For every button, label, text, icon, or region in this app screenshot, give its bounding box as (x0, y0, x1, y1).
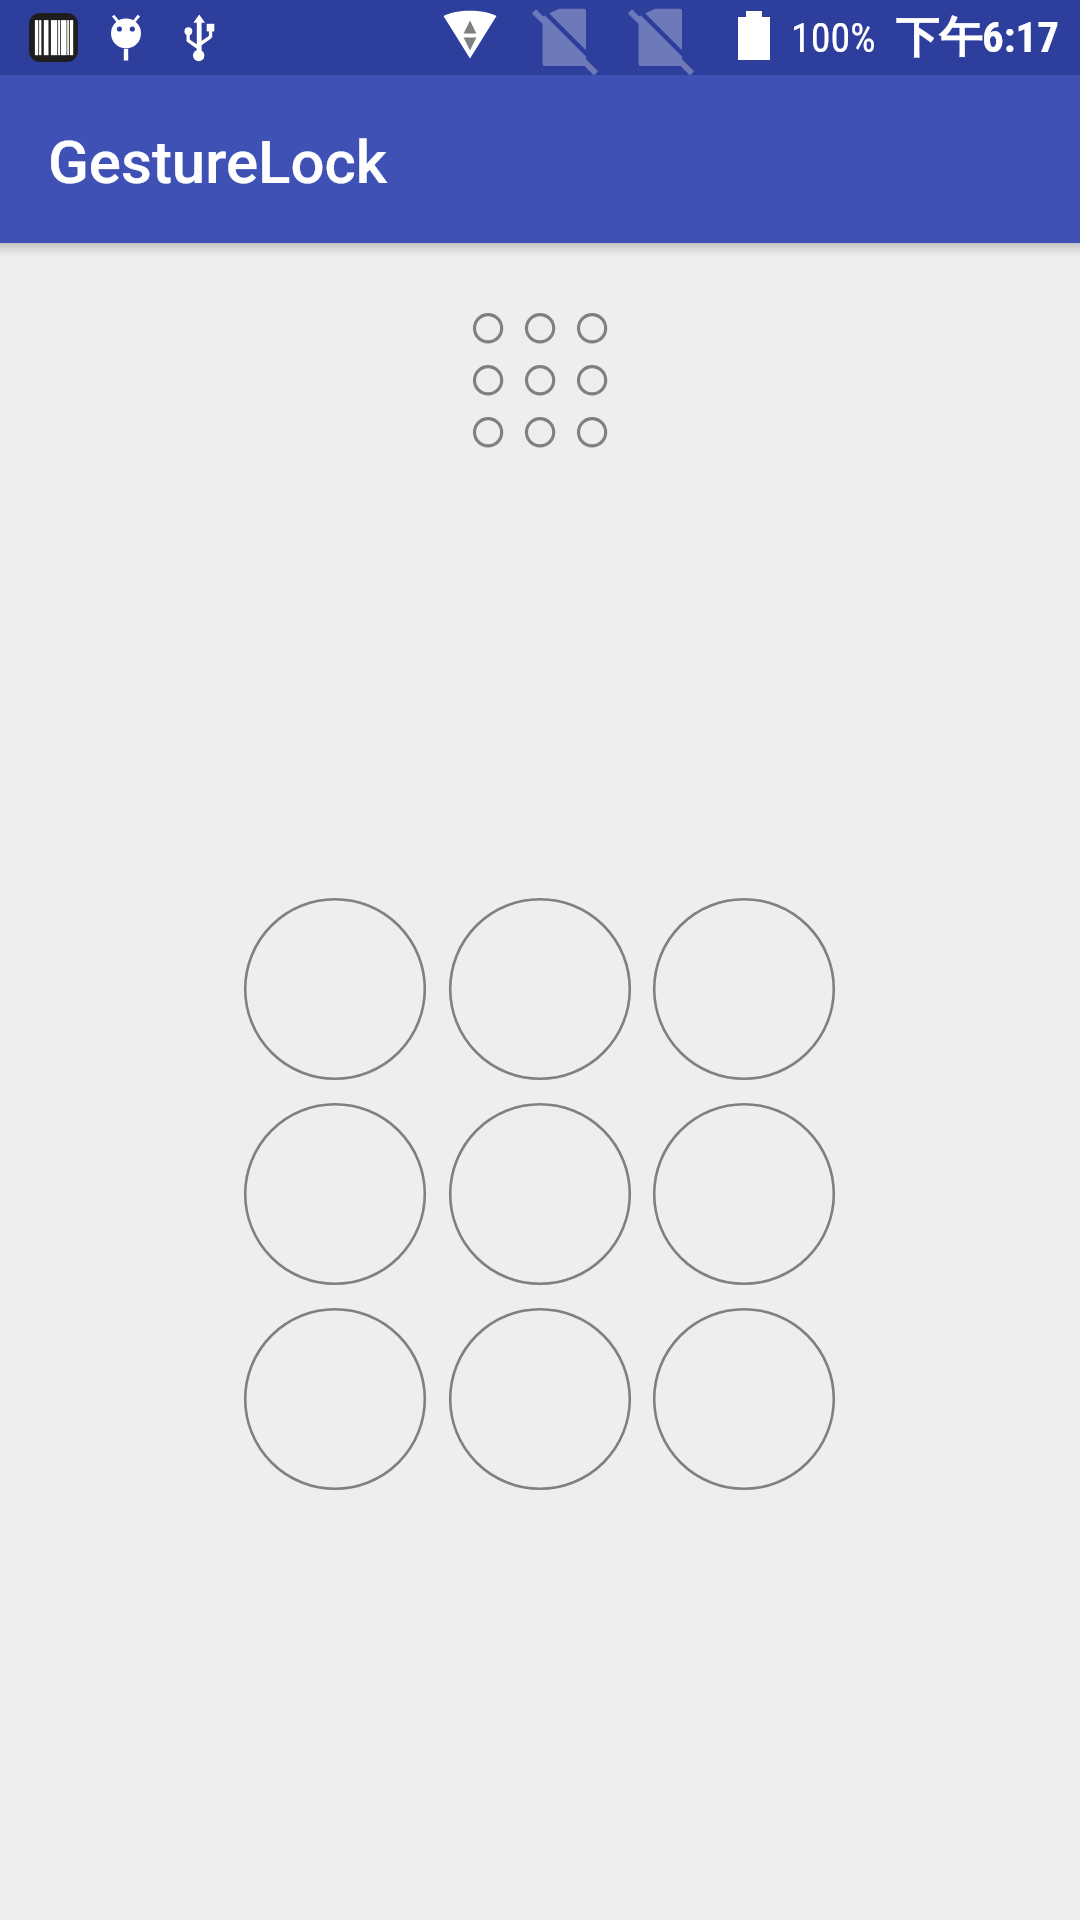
button[interactable]: Pattern preview dot 9 (574, 414, 610, 450)
button[interactable]: Gesture lock node 3 (652, 897, 836, 1081)
button[interactable]: Gesture lock node 1 (243, 897, 427, 1081)
button[interactable]: Pattern preview dot 1 (470, 310, 506, 346)
button[interactable]: Pattern preview dot 3 (574, 310, 610, 346)
button[interactable]: Pattern preview dot 7 (470, 414, 506, 450)
button[interactable]: Gesture lock node 2 (448, 897, 632, 1081)
button[interactable]: Gesture lock node 6 (652, 1102, 836, 1286)
staticText: 下午6:17 (896, 11, 1059, 65)
button[interactable]: Pattern preview dot 4 (470, 362, 506, 398)
button[interactable]: Gesture lock node 5 (448, 1102, 632, 1286)
button[interactable]: Gesture lock node 4 (243, 1102, 427, 1286)
button[interactable]: Pattern preview dot 8 (522, 414, 558, 450)
staticText: 100% (791, 15, 876, 62)
button[interactable]: Gesture lock node 9 (652, 1307, 836, 1491)
button[interactable]: Gesture lock node 7 (243, 1307, 427, 1491)
button[interactable]: Pattern preview dot 2 (522, 310, 558, 346)
button[interactable]: Pattern preview dot 6 (574, 362, 610, 398)
button[interactable]: Pattern preview dot 5 (522, 362, 558, 398)
button[interactable]: Gesture lock node 8 (448, 1307, 632, 1491)
staticText: GestureLock (48, 127, 388, 197)
